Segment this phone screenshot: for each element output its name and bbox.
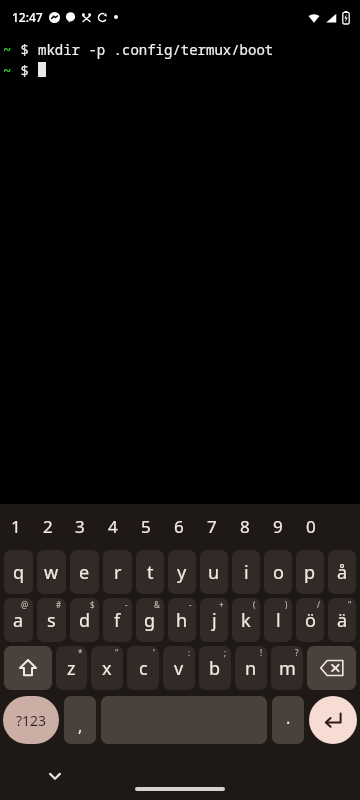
staticText: * [78,647,83,658]
staticText: , [78,715,83,737]
staticText: w [44,560,59,585]
button[interactable]: d [70,598,99,642]
button[interactable]: . [272,696,304,744]
button[interactable]: ~ [0,34,360,504]
button[interactable]: c [127,646,159,690]
button[interactable]: m [271,646,303,690]
staticText: d [79,608,91,633]
button[interactable]: o [264,550,292,594]
staticText: k [241,608,251,633]
button[interactable]: 3 [64,504,96,548]
staticText: $ [12,61,38,80]
button[interactable]: i [232,550,260,594]
button[interactable]: z [56,646,87,690]
staticText: - [189,599,192,610]
button[interactable]: g [136,598,164,642]
staticText: j [212,608,217,633]
button[interactable]: å [328,550,356,594]
staticText: ; [224,647,227,658]
staticText: ~ [3,61,12,80]
button[interactable]: 9 [261,504,294,548]
staticText: - [125,599,128,610]
staticText: q [13,560,25,585]
staticText: ä [337,608,348,633]
button[interactable]: Shift [4,646,52,690]
staticText: 3 [75,515,85,538]
button[interactable]: , [64,696,96,744]
staticText: ' [153,647,155,658]
button[interactable]: p [296,550,324,594]
staticText: m [279,656,296,681]
staticText: + [219,599,224,610]
staticText: n [245,656,257,681]
button[interactable]: w [37,550,66,594]
button[interactable]: a [4,598,33,642]
staticText: o [273,560,284,585]
button[interactable]: Backspace [307,646,356,690]
button[interactable]: ö [296,598,324,642]
staticText: 5 [141,515,151,538]
staticText: " [348,599,352,610]
button[interactable]: e [70,550,99,594]
button[interactable]: ?123 [3,696,59,744]
staticText: å [337,560,348,585]
staticText: a [13,608,24,633]
button[interactable]: x [91,646,123,690]
button[interactable]: 5 [129,504,162,548]
button[interactable]: h [168,598,196,642]
button[interactable]: r [103,550,132,594]
button[interactable]: b [199,646,231,690]
staticText: & [154,599,160,610]
button[interactable]: n [235,646,267,690]
staticText: b [209,656,221,681]
button[interactable]: 1 [0,504,32,548]
button[interactable]: t [136,550,164,594]
button[interactable]: j [200,598,228,642]
staticText: $ [90,599,95,610]
staticText: : [188,647,191,658]
staticText: # [56,599,62,610]
staticText: g [144,608,156,633]
staticText: f [114,608,121,633]
button[interactable]: Hide keyboard [40,761,70,791]
button[interactable]: l [264,598,292,642]
button[interactable]: y [168,550,196,594]
button[interactable]: ä [328,598,356,642]
button[interactable]: 4 [96,504,129,548]
button[interactable]: s [37,598,66,642]
staticText: . [286,707,291,729]
button[interactable]: k [232,598,260,642]
button[interactable]: v [163,646,195,690]
staticText: h [176,608,188,633]
staticText: ?123 [16,711,47,730]
button[interactable]: Enter [309,696,357,744]
button[interactable]: 8 [228,504,261,548]
button[interactable]: q [4,550,33,594]
staticText: " [115,647,119,658]
staticText: l [276,608,281,633]
button[interactable]: 2 [32,504,64,548]
staticText: 1 [11,515,21,538]
staticText: 8 [240,515,250,538]
button[interactable]: 0 [294,504,327,548]
staticText: u [208,560,220,585]
staticText: i [244,560,249,585]
staticText: 12:47 [12,9,43,25]
button[interactable]: Space [101,696,267,744]
staticText: z [67,656,76,681]
staticText: v [174,656,184,681]
button[interactable]: 7 [195,504,228,548]
staticText: c [139,656,148,681]
staticText: / [317,599,320,610]
button[interactable]: 6 [162,504,195,548]
button[interactable]: u [200,550,228,594]
staticText: ~ [3,40,12,59]
staticText: 7 [207,515,217,538]
staticText: ö [305,608,316,633]
button[interactable]: f [103,598,132,642]
staticText: 0 [306,515,316,538]
staticText: mkdir -p .config/termux/boot [38,40,274,59]
staticText: p [304,560,316,585]
staticText: @ [21,599,29,610]
staticText: r [114,560,122,585]
